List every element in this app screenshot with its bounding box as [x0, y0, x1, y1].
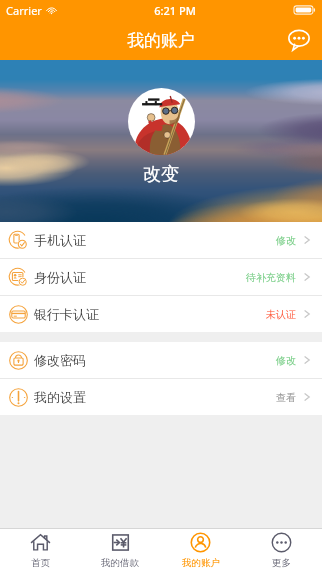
staticText: 修改 — [276, 354, 296, 367]
staticText: 改变 — [143, 163, 179, 186]
staticText: 查看 — [276, 391, 296, 404]
button[interactable]: 我的借款 — [80, 529, 160, 572]
staticText: 我的设置 — [34, 389, 86, 405]
button[interactable]: 我的账户 — [160, 529, 241, 572]
button[interactable]: 手机认证 — [0, 222, 322, 258]
staticText: 修改 — [276, 234, 296, 247]
button[interactable]: 修改密码 — [0, 342, 322, 378]
staticText: 待补充资料 — [246, 271, 296, 284]
staticText: 未认证 — [266, 308, 296, 321]
button[interactable]: 身份认证 — [0, 259, 322, 295]
staticText: 我的账户 — [127, 30, 195, 51]
button[interactable]: 我的设置 — [0, 379, 322, 415]
staticText: 我的借款 — [101, 557, 139, 569]
staticText: Carrier — [6, 3, 42, 18]
staticText: 手机认证 — [34, 232, 86, 248]
staticText: 更多 — [272, 557, 291, 569]
staticText: 修改密码 — [34, 352, 86, 368]
staticText: 我的账户 — [182, 557, 220, 569]
button[interactable]: 首页 — [0, 529, 80, 572]
button[interactable]: 更多 — [241, 529, 322, 572]
staticText: 6:21 PM — [154, 3, 196, 18]
button[interactable]: Messages — [284, 25, 314, 55]
staticText: 银行卡认证 — [34, 306, 99, 322]
button[interactable]: 银行卡认证 — [0, 296, 322, 332]
button[interactable]: Avatar — [128, 88, 195, 155]
staticText: 身份认证 — [34, 269, 86, 285]
staticText: 首页 — [31, 557, 50, 569]
